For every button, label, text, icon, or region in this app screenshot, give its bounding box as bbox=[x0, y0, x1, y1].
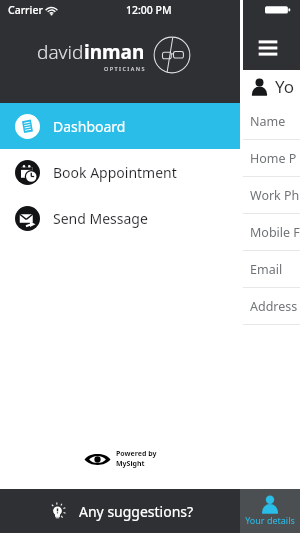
button[interactable]: Home P bbox=[243, 140, 300, 177]
staticText: Email bbox=[250, 261, 283, 278]
staticText: Dashboard bbox=[53, 117, 126, 136]
staticText: Name bbox=[250, 113, 286, 130]
staticText: inman bbox=[84, 39, 145, 65]
staticText: Book Appointment bbox=[53, 163, 177, 182]
staticText: 12:00 PM bbox=[126, 3, 172, 17]
staticText: Carrier bbox=[8, 3, 43, 17]
staticText: Send Message bbox=[53, 209, 148, 228]
staticText: MySight bbox=[116, 459, 145, 469]
button[interactable]: Any suggestions? bbox=[0, 489, 240, 533]
button[interactable]: Dashboard bbox=[0, 103, 240, 149]
staticText: Work Ph bbox=[250, 187, 300, 204]
button[interactable]: Work Ph bbox=[243, 177, 300, 214]
staticText: Mobile F bbox=[250, 224, 300, 241]
staticText: Yo bbox=[275, 75, 295, 98]
button[interactable]: Mobile F bbox=[243, 214, 300, 251]
button[interactable]: Book Appointment bbox=[0, 149, 240, 195]
staticText: Home P bbox=[250, 150, 297, 167]
staticText: david bbox=[37, 39, 84, 65]
button[interactable]: Address bbox=[243, 288, 300, 325]
button[interactable]: Name bbox=[243, 103, 300, 140]
button[interactable]: Send Message bbox=[0, 195, 240, 241]
button[interactable]: Menu bbox=[255, 35, 281, 61]
button[interactable]: Your details bbox=[240, 489, 300, 533]
staticText: O P T I C I A N S bbox=[104, 65, 145, 72]
staticText: Any suggestions? bbox=[79, 502, 194, 521]
staticText: Address bbox=[250, 298, 298, 315]
staticText: Your details bbox=[245, 514, 295, 526]
button[interactable]: Email bbox=[243, 251, 300, 288]
staticText: Powered by bbox=[116, 449, 157, 459]
